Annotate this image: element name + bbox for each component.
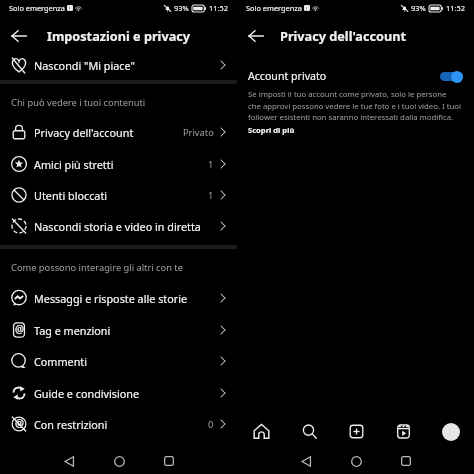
staticText: 1 bbox=[208, 189, 214, 202]
staticText: Con restrizioni bbox=[34, 417, 108, 432]
staticText: Privato bbox=[183, 126, 214, 139]
button[interactable]: Recents bbox=[157, 449, 181, 473]
staticText: Utenti bloccati bbox=[34, 188, 108, 203]
button[interactable]: Home bbox=[344, 449, 368, 473]
button[interactable]: Create bbox=[333, 417, 380, 446]
button[interactable]: Back bbox=[244, 24, 268, 48]
button[interactable]: Home bbox=[107, 449, 131, 473]
button[interactable]: Privacy dell'account bbox=[0, 116, 237, 148]
button[interactable]: Messaggi e risposte alle storie bbox=[0, 282, 237, 314]
staticText: @ bbox=[15, 322, 24, 336]
staticText: Solo emergenza bbox=[246, 3, 302, 13]
staticText: 93% bbox=[174, 3, 189, 13]
staticText: Commenti bbox=[34, 354, 87, 369]
staticText: 11:52 bbox=[209, 3, 228, 13]
button[interactable]: Account privato bbox=[237, 63, 474, 89]
button[interactable]: Back bbox=[294, 449, 318, 473]
button[interactable]: Nascondi storia e video in diretta bbox=[0, 210, 237, 242]
staticText: Tag e menzioni bbox=[34, 323, 111, 338]
staticText: 11:52 bbox=[446, 3, 465, 13]
button[interactable]: Back bbox=[7, 24, 31, 48]
staticText: Scopri di più bbox=[248, 125, 295, 135]
button[interactable]: Commenti bbox=[0, 345, 237, 377]
staticText: Impostazioni e privacy bbox=[47, 27, 191, 44]
staticText: Se imposti il tuo account come privato, … bbox=[248, 89, 461, 122]
staticText: Chi può vedere i tuoi contenuti bbox=[11, 96, 146, 108]
button[interactable]: Amici più stretti bbox=[0, 148, 237, 180]
button[interactable]: Utenti bloccati bbox=[0, 179, 237, 211]
staticText: Amici più stretti bbox=[34, 157, 114, 172]
staticText: 93% bbox=[411, 3, 426, 13]
staticText: 0 bbox=[208, 418, 214, 431]
button[interactable]: Back bbox=[57, 449, 81, 473]
staticText: ! bbox=[306, 5, 308, 11]
staticText: Nascondi storia e video in diretta bbox=[34, 219, 201, 234]
staticText: ! bbox=[69, 5, 71, 11]
button[interactable]: Reels bbox=[380, 417, 427, 446]
button[interactable]: Home bbox=[237, 417, 285, 446]
button[interactable]: Guide e condivisione bbox=[0, 377, 237, 409]
staticText: Account privato bbox=[248, 69, 327, 83]
button[interactable]: Nascondi "Mi piace" bbox=[0, 49, 237, 81]
staticText: Privacy dell'account bbox=[280, 27, 406, 44]
button[interactable]: Profile bbox=[427, 417, 474, 446]
staticText: Come possono interagire gli altri con te bbox=[11, 261, 183, 273]
button[interactable]: Recents bbox=[394, 449, 418, 473]
staticText: Solo emergenza bbox=[9, 3, 65, 13]
staticText: Nascondi "Mi piace" bbox=[34, 58, 135, 73]
staticText: Privacy dell'account bbox=[34, 125, 134, 140]
button[interactable]: Search bbox=[285, 417, 333, 446]
button[interactable]: @ bbox=[0, 314, 237, 346]
staticText: Messaggi e risposte alle storie bbox=[34, 291, 188, 306]
button[interactable]: Scopri di più bbox=[248, 125, 295, 135]
staticText: @ bbox=[15, 416, 24, 430]
button[interactable]: @ bbox=[0, 408, 237, 440]
staticText: 1 bbox=[208, 158, 214, 171]
staticText: Guide e condivisione bbox=[34, 386, 140, 401]
